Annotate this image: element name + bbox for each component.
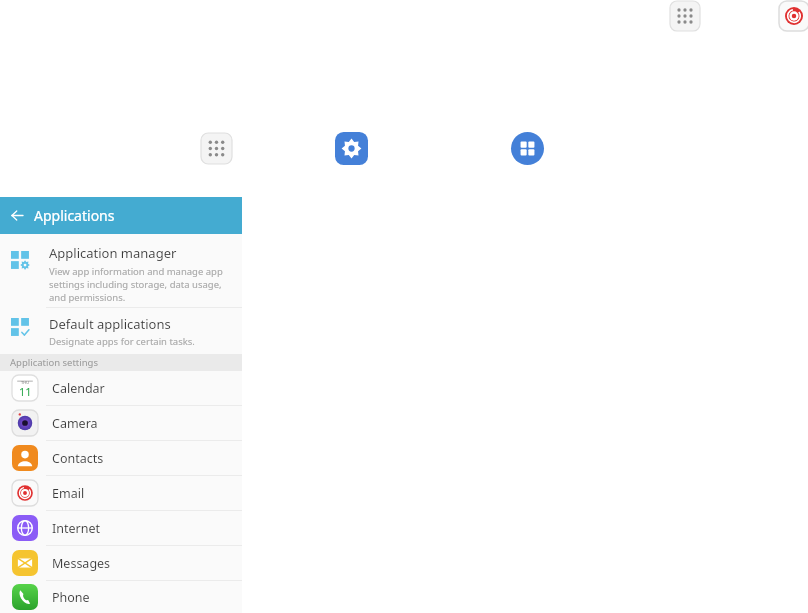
staticText: 11 xyxy=(19,384,32,399)
staticText: Camera xyxy=(52,415,98,432)
button[interactable]: Back xyxy=(0,197,34,234)
staticText: View app information and manage app sett… xyxy=(49,265,241,304)
staticText: Email xyxy=(52,485,85,502)
staticText: Internet xyxy=(52,520,100,537)
button[interactable]: Apps xyxy=(201,133,232,164)
button[interactable]: Phone xyxy=(0,581,242,613)
staticText: Default applications xyxy=(49,315,171,333)
staticText: Application manager xyxy=(49,244,177,262)
button[interactable]: Contacts xyxy=(0,441,242,475)
staticText: Application settings xyxy=(10,356,98,369)
button[interactable]: Default applications xyxy=(0,308,242,354)
button[interactable]: Back xyxy=(0,197,242,234)
button[interactable]: Settings xyxy=(335,132,368,165)
staticText: THU xyxy=(21,380,30,385)
staticText: Contacts xyxy=(52,450,104,467)
staticText: Messages xyxy=(52,555,111,572)
button[interactable]: Email xyxy=(779,1,808,31)
button[interactable]: Internet xyxy=(0,511,242,545)
button[interactable]: Apps xyxy=(670,1,700,31)
staticText: Calendar xyxy=(52,380,105,397)
button[interactable]: Application manager xyxy=(511,132,544,165)
button[interactable]: Camera xyxy=(0,406,242,440)
staticText: Designate apps for certain tasks. xyxy=(49,335,195,348)
button[interactable]: Email xyxy=(0,476,242,510)
button[interactable]: Application manager xyxy=(0,234,242,307)
staticText: Applications xyxy=(34,206,115,225)
button[interactable]: Messages xyxy=(0,546,242,580)
staticText: Phone xyxy=(52,589,90,606)
button[interactable]: THU xyxy=(0,371,242,405)
